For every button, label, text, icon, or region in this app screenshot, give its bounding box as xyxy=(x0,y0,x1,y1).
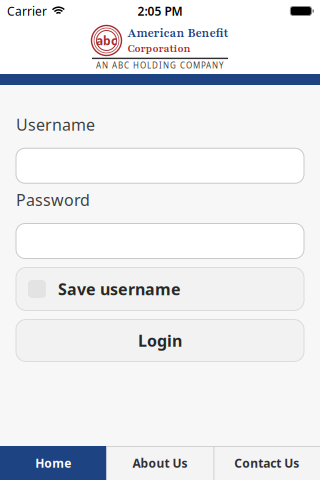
button[interactable]: Contact Us xyxy=(213,446,320,480)
staticText: Carrier xyxy=(7,3,47,19)
button[interactable]: Home xyxy=(0,446,106,480)
staticText: 2:05 PM xyxy=(137,3,182,19)
staticText: abc xyxy=(96,32,117,49)
staticText: Save username xyxy=(58,278,181,300)
staticText: About Us xyxy=(132,455,187,471)
staticText: Contact Us xyxy=(234,455,299,471)
button[interactable] xyxy=(16,223,304,258)
staticText: Password xyxy=(16,189,90,210)
button[interactable]: Login xyxy=(16,319,304,361)
button[interactable] xyxy=(16,148,304,183)
staticText: Login xyxy=(138,330,182,351)
staticText: Home xyxy=(35,455,71,471)
button[interactable]: About Us xyxy=(106,446,213,480)
staticText: Corporation xyxy=(127,41,190,56)
staticText: American Benefit xyxy=(127,25,228,41)
staticText: Username xyxy=(16,114,95,135)
staticText: AN ABC HOLDING COMPANY xyxy=(96,60,224,71)
button[interactable]: Save username xyxy=(16,267,304,310)
